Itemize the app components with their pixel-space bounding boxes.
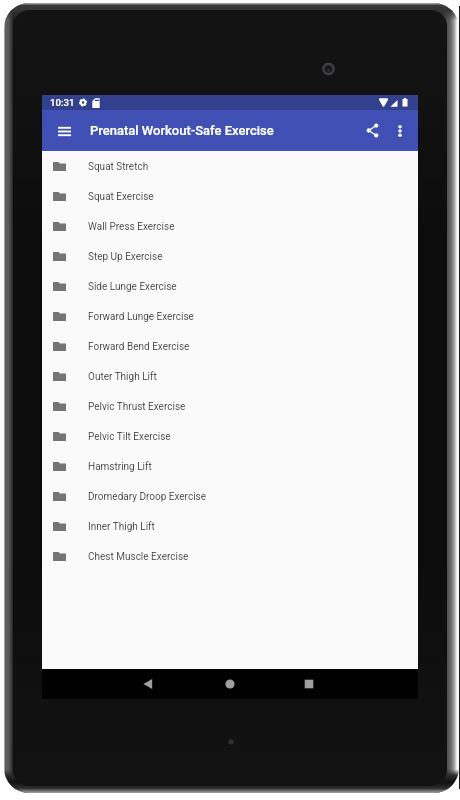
button[interactable]: Forward Bend Exercise (42, 332, 418, 362)
button[interactable]: Pelvic Thrust Exercise (42, 392, 418, 422)
button[interactable]: Navigation menu (51, 118, 77, 144)
button[interactable]: Chest Muscle Exercise (42, 542, 418, 572)
staticText: Inner Thigh Lift (88, 521, 155, 533)
button[interactable]: Forward Lunge Exercise (42, 302, 418, 332)
staticText: Dromedary Droop Exercise (88, 491, 207, 503)
staticText: Outer Thigh Lift (88, 371, 157, 383)
staticText: Forward Bend Exercise (88, 341, 190, 353)
button[interactable]: Squat Stretch (42, 152, 418, 182)
staticText: Squat Stretch (88, 161, 149, 173)
staticText: 10:31 (50, 97, 75, 108)
button[interactable]: Pelvic Tilt Exercise (42, 422, 418, 452)
button[interactable]: Wall Press Exercise (42, 212, 418, 242)
button[interactable]: Step Up Exercise (42, 242, 418, 272)
staticText: Squat Exercise (88, 191, 154, 203)
button[interactable]: Squat Exercise (42, 182, 418, 212)
button[interactable]: Recents (288, 669, 330, 699)
button[interactable]: Outer Thigh Lift (42, 362, 418, 392)
button[interactable]: Hamstring Lift (42, 452, 418, 482)
staticText: Forward Lunge Exercise (88, 311, 194, 323)
staticText: Pelvic Thrust Exercise (88, 401, 186, 413)
staticText: Prenatal Workout-Safe Exercise (90, 123, 274, 138)
staticText: Chest Muscle Exercise (88, 551, 189, 563)
button[interactable]: Share (361, 110, 389, 151)
button[interactable]: Dromedary Droop Exercise (42, 482, 418, 512)
staticText: Side Lunge Exercise (88, 281, 177, 293)
button[interactable]: Back (127, 669, 169, 699)
staticText: Pelvic Tilt Exercise (88, 431, 171, 443)
button[interactable]: Home (209, 669, 251, 699)
button[interactable]: More options (389, 110, 411, 151)
staticText: Step Up Exercise (88, 251, 163, 263)
button[interactable]: Side Lunge Exercise (42, 272, 418, 302)
button[interactable]: Inner Thigh Lift (42, 512, 418, 542)
staticText: Wall Press Exercise (88, 221, 175, 233)
staticText: Hamstring Lift (88, 461, 152, 473)
